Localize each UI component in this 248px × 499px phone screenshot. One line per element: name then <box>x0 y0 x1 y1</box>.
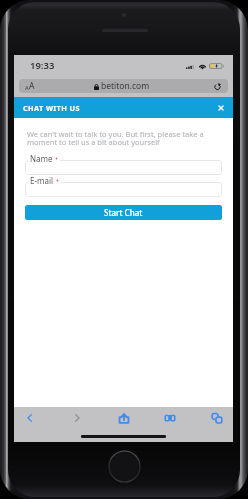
staticText: A <box>25 84 29 92</box>
staticText: A <box>29 80 35 92</box>
button[interactable]: Share <box>111 407 137 429</box>
button[interactable]: A <box>19 79 228 93</box>
button[interactable]: Name <box>25 160 222 175</box>
staticText: betiton.com <box>101 80 150 92</box>
button[interactable]: Reload <box>210 79 224 93</box>
other: Home <box>108 450 141 483</box>
staticText: E-mail <box>30 175 54 186</box>
button[interactable]: CHAT WITH US <box>14 97 233 118</box>
staticText: Name <box>30 153 53 164</box>
staticText: CHAT WITH US <box>23 103 80 113</box>
staticText: 19:33 <box>30 59 55 72</box>
button[interactable]: Bookmarks <box>157 407 183 429</box>
button[interactable]: Start Chat <box>25 205 222 220</box>
button[interactable]: Tabs <box>204 407 230 429</box>
button[interactable]: Back <box>17 407 43 429</box>
staticText: Start Chat <box>104 207 143 218</box>
button[interactable]: Forward <box>64 407 90 429</box>
button[interactable]: E-mail <box>25 182 222 197</box>
button[interactable]: Close chat <box>215 102 227 114</box>
staticText: We can't wait to talk to you. But first,… <box>27 129 204 147</box>
